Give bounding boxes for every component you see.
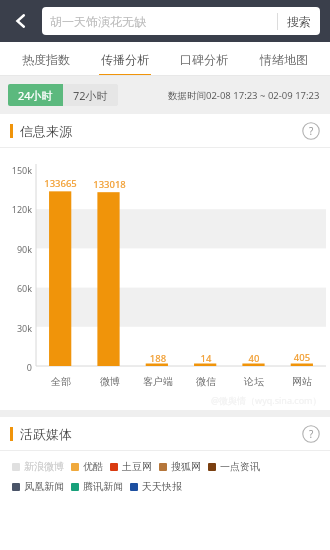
staticText: 论坛 xyxy=(244,375,264,388)
button[interactable]: 传播分析 xyxy=(85,42,164,76)
button[interactable]: 搜狐网 xyxy=(159,460,208,473)
staticText: 24小时 xyxy=(18,88,53,103)
staticText: 腾讯新闻 xyxy=(83,480,123,493)
staticText: 60k xyxy=(16,282,32,293)
staticText: 40 xyxy=(230,352,278,365)
staticText: 传播分析 xyxy=(101,52,149,67)
button[interactable]: Help xyxy=(302,425,320,443)
staticText: @微舆情（wyq.sina.com） xyxy=(211,394,322,406)
staticText: 150k xyxy=(11,164,32,175)
button[interactable]: 热度指数 xyxy=(6,42,85,76)
staticText: 网站 xyxy=(292,375,312,388)
button[interactable]: Help xyxy=(302,122,320,140)
button[interactable]: 一点资讯 xyxy=(208,460,267,473)
staticText: 133665 xyxy=(36,177,85,190)
staticText: 活跃媒体 xyxy=(20,426,72,442)
staticText: 133018 xyxy=(85,178,134,191)
button[interactable]: 全部 xyxy=(36,375,85,388)
staticText: 0 xyxy=(26,361,32,372)
button[interactable]: 网站 xyxy=(278,375,326,388)
button[interactable]: 土豆网 xyxy=(110,460,159,473)
button[interactable]: Back xyxy=(0,0,42,42)
staticText: 全部 xyxy=(51,375,71,388)
button[interactable]: 腾讯新闻 xyxy=(71,480,130,493)
button[interactable]: 天天快报 xyxy=(130,480,189,493)
staticText: 120k xyxy=(11,203,32,214)
staticText: 优酷 xyxy=(83,460,103,473)
button[interactable]: 情绪地图 xyxy=(244,42,324,76)
button[interactable]: 新浪微博 xyxy=(12,460,71,473)
staticText: 搜狐网 xyxy=(171,460,201,473)
staticText: 信息来源 xyxy=(20,123,72,139)
staticText: 72小时 xyxy=(73,88,108,103)
button[interactable]: 论坛 xyxy=(230,375,278,388)
staticText: 情绪地图 xyxy=(260,52,308,67)
staticText: 90k xyxy=(16,243,32,254)
staticText: 天天快报 xyxy=(142,480,182,493)
button[interactable]: 搜索 xyxy=(278,7,320,35)
staticText: 凤凰新闻 xyxy=(24,480,64,493)
button[interactable]: 微信 xyxy=(182,375,230,388)
button[interactable]: 微博 xyxy=(85,375,134,388)
staticText: 188 xyxy=(134,352,182,365)
staticText: 热度指数 xyxy=(22,52,70,67)
staticText: 搜索 xyxy=(287,14,311,29)
staticText: 胡一天饰演花无缺 xyxy=(50,14,277,29)
button[interactable]: 72小时 xyxy=(63,84,118,106)
button[interactable]: 凤凰新闻 xyxy=(12,480,71,493)
staticText: 微博 xyxy=(100,375,120,388)
button[interactable]: 客户端 xyxy=(134,375,182,388)
staticText: 土豆网 xyxy=(122,460,152,473)
staticText: 14 xyxy=(182,352,230,365)
staticText: ? xyxy=(309,124,314,138)
staticText: 微信 xyxy=(196,375,216,388)
button[interactable]: 口碑分析 xyxy=(164,42,244,76)
button[interactable]: 24小时 xyxy=(8,84,63,106)
staticText: 客户端 xyxy=(143,375,173,388)
button[interactable]: 胡一天饰演花无缺 xyxy=(42,7,320,35)
staticText: 口碑分析 xyxy=(180,52,228,67)
button[interactable]: 优酷 xyxy=(71,460,110,473)
staticText: 30k xyxy=(16,322,32,333)
staticText: 一点资讯 xyxy=(220,460,260,473)
staticText: 405 xyxy=(278,351,326,364)
staticText: 数据时间02-08 17:23 ~ 02-09 17:23 xyxy=(168,89,320,102)
staticText: ? xyxy=(309,427,314,441)
staticText: 新浪微博 xyxy=(24,460,64,473)
